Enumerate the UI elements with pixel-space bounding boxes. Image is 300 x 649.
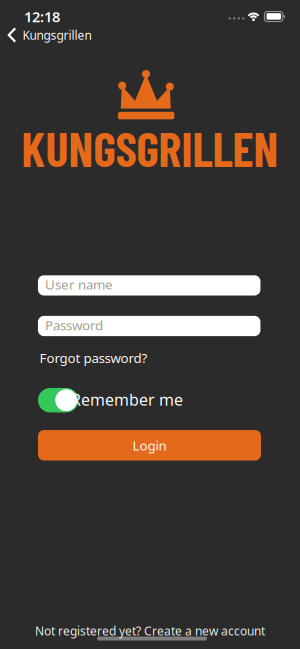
button[interactable]: Not registered yet? Create a new account — [35, 623, 265, 639]
staticText: Forgot password? — [39, 349, 147, 367]
staticText: Login — [132, 436, 166, 454]
staticText: Password — [45, 316, 103, 334]
button[interactable]: Remember me — [38, 388, 78, 412]
staticText: Remember me — [71, 389, 183, 410]
staticText: KUNGSGRILLEN — [21, 119, 278, 177]
button[interactable]: Back — [7, 27, 91, 43]
button[interactable]: Login — [38, 430, 261, 461]
textField[interactable]: User name — [45, 275, 260, 293]
staticText: 12:18 — [24, 7, 60, 26]
staticText: User name — [45, 275, 113, 293]
staticText: Not registered yet? Create a new account — [35, 623, 265, 639]
button[interactable]: Forgot password? — [39, 349, 147, 367]
staticText: Kungsgrillen — [22, 27, 91, 43]
secureTextField[interactable]: Password — [45, 316, 260, 334]
